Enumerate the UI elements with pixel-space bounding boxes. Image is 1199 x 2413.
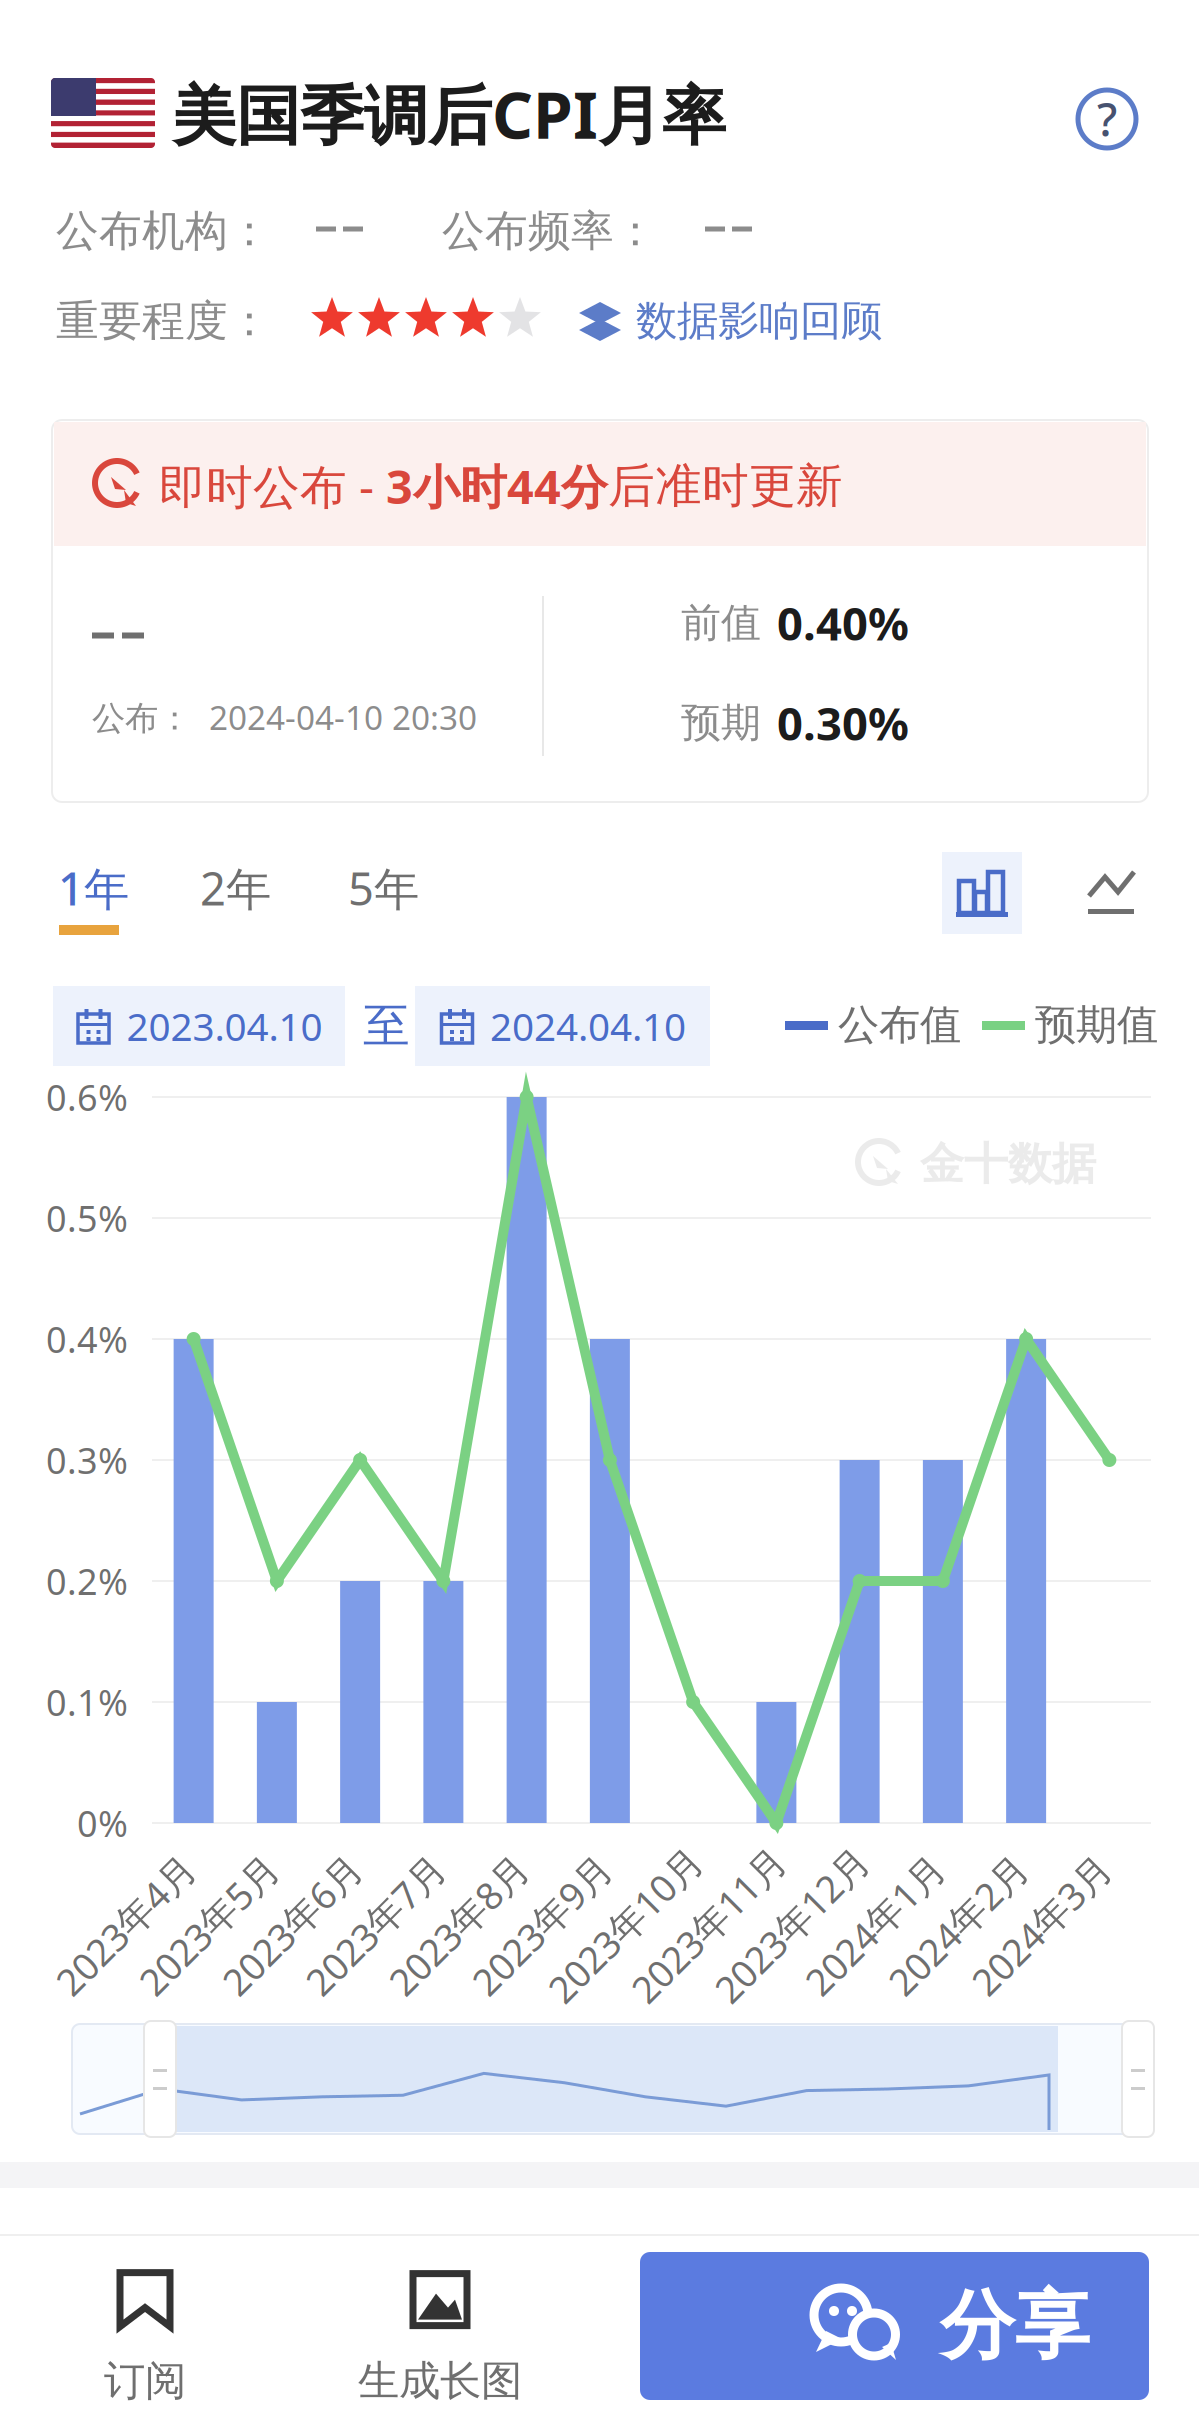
button[interactable]: 分享 bbox=[640, 2252, 1149, 2400]
staticText: 数据影响回顾 bbox=[636, 296, 882, 346]
staticText: 5年 bbox=[348, 858, 419, 918]
button[interactable]: 2023.04.10 bbox=[53, 986, 345, 1066]
button[interactable]: 5年 bbox=[348, 858, 419, 918]
staticText: 0.30% bbox=[777, 693, 909, 753]
staticText: 分享 bbox=[940, 2280, 1090, 2372]
staticText: 2023年8月 bbox=[369, 1900, 548, 1950]
button[interactable]: 2年 bbox=[200, 858, 271, 918]
staticText: 2024年1月 bbox=[785, 1900, 964, 1950]
button[interactable]: Line chart bbox=[1086, 868, 1136, 920]
staticText: 公布机构： bbox=[56, 205, 271, 257]
staticText: 公布频率： bbox=[442, 205, 657, 257]
staticText: 前值 bbox=[681, 598, 761, 647]
staticText: 2024年2月 bbox=[869, 1900, 1048, 1950]
staticText: 0.3% bbox=[46, 1436, 128, 1484]
staticText: 2023.04.10 bbox=[126, 1000, 322, 1052]
staticText: 订阅 bbox=[104, 2356, 186, 2406]
staticText: 至 bbox=[363, 997, 410, 1055]
staticText: 生成长图 bbox=[358, 2356, 522, 2406]
staticText: 2023年12月 bbox=[692, 1900, 892, 1950]
staticText: 金十数据 bbox=[920, 1137, 1096, 1191]
button[interactable]: 订阅 bbox=[104, 2270, 186, 2406]
staticText: 0.5% bbox=[46, 1194, 128, 1242]
staticText: 美国季调后CPI月率 bbox=[172, 71, 726, 156]
staticText: 2023年4月 bbox=[36, 1900, 215, 1950]
button[interactable]: 数据影响回顾 bbox=[576, 296, 882, 346]
staticText: 2023年11月 bbox=[608, 1900, 808, 1950]
staticText: 0.4% bbox=[46, 1315, 128, 1363]
button[interactable]: 1年 bbox=[58, 858, 129, 918]
staticText: 预期 bbox=[681, 698, 761, 747]
button[interactable]: 2024.04.10 bbox=[415, 986, 710, 1066]
staticText: 1年 bbox=[58, 858, 129, 918]
staticText: 2023年6月 bbox=[203, 1900, 382, 1950]
staticText: 2023年5月 bbox=[119, 1900, 298, 1950]
staticText: 即时公布 - bbox=[145, 455, 386, 517]
staticText: 公布值 bbox=[838, 1000, 961, 1050]
staticText: 后准时更新 bbox=[608, 457, 843, 515]
staticText: 公布： 2024-04-10 20:30 bbox=[92, 695, 477, 739]
staticText: 2023年9月 bbox=[452, 1900, 631, 1950]
staticText: 0% bbox=[77, 1799, 128, 1847]
staticText: 0.2% bbox=[46, 1557, 128, 1605]
staticText: 2023年7月 bbox=[286, 1900, 465, 1950]
staticText: 2023年10月 bbox=[525, 1900, 725, 1950]
staticText: 重要程度： bbox=[56, 295, 271, 347]
staticText: 0.40% bbox=[777, 593, 909, 653]
button[interactable]: Bar chart bbox=[942, 852, 1022, 934]
staticText: 2024.04.10 bbox=[490, 1000, 686, 1052]
button[interactable]: 生成长图 bbox=[358, 2270, 522, 2406]
staticText: ? bbox=[1097, 89, 1117, 149]
staticText: 3小时44分 bbox=[386, 455, 608, 517]
button[interactable]: Help bbox=[1078, 90, 1136, 148]
staticText: 2年 bbox=[200, 858, 271, 918]
staticText: 2024年3月 bbox=[952, 1900, 1131, 1950]
staticText: 预期值 bbox=[1035, 1000, 1158, 1050]
staticText: 0.6% bbox=[46, 1073, 128, 1121]
staticText: 0.1% bbox=[46, 1678, 128, 1726]
